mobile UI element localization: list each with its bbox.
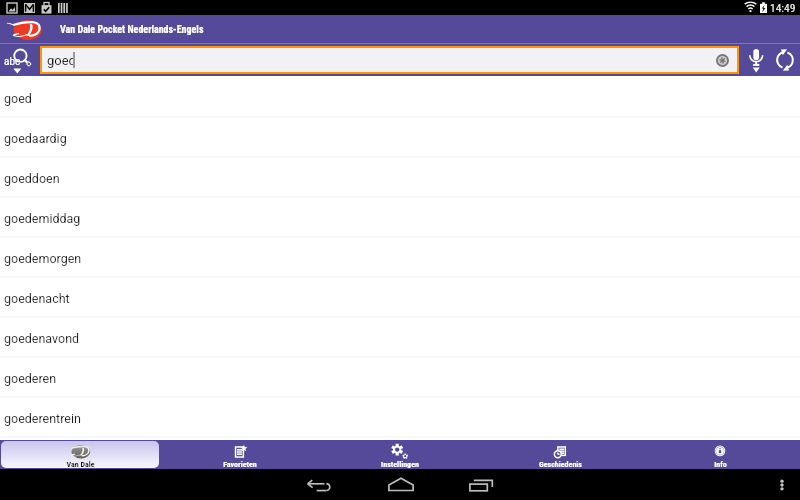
staticText: Van Dale (66, 460, 95, 468)
button[interactable]: Home (384, 469, 418, 500)
button[interactable]: Info (641, 441, 799, 468)
button[interactable]: Recent apps (465, 469, 499, 500)
button[interactable]: Swap languages (770, 45, 800, 75)
button[interactable]: Search mode (0, 44, 40, 76)
staticText: abc (4, 56, 21, 68)
button[interactable]: goedenavond (0, 318, 800, 358)
button[interactable]: goedemiddag (0, 198, 800, 238)
button[interactable]: goedemorgen (0, 238, 800, 278)
button[interactable]: goedenacht (0, 278, 800, 318)
staticText: goedaardig (4, 131, 67, 146)
button[interactable]: Instellingen (321, 441, 479, 468)
button[interactable]: Clear text (716, 54, 729, 67)
button[interactable]: goeddoen (0, 158, 800, 198)
button[interactable]: goederentrein (0, 398, 800, 438)
staticText: goedemorgen (4, 251, 82, 266)
button[interactable]: goedaardig (0, 118, 800, 158)
button[interactable]: Van Dale (1, 441, 159, 468)
staticText: Instellingen (381, 460, 419, 469)
staticText: Van Dale Pocket Nederlands-Engels (60, 24, 204, 36)
button[interactable]: Voice search (740, 45, 770, 75)
button[interactable]: goed (0, 78, 800, 118)
staticText: goedenavond (4, 331, 80, 346)
staticText: goed (4, 91, 32, 106)
staticText: goederen (4, 371, 57, 386)
staticText: goederentrein (4, 411, 81, 426)
staticText: Favorieten (223, 460, 257, 469)
staticText: Geschiedenis (539, 460, 582, 469)
staticText: 14:49 (770, 1, 796, 14)
staticText: goeddoen (4, 171, 60, 186)
button[interactable]: Back (302, 469, 336, 500)
staticText: goedemiddag (4, 211, 81, 226)
button[interactable]: More options (774, 477, 790, 493)
button[interactable]: Geschiedenis (481, 441, 639, 468)
button[interactable]: goederen (0, 358, 800, 398)
button[interactable]: Favorieten (161, 441, 319, 468)
staticText: goedenacht (4, 291, 70, 306)
staticText: Info (714, 460, 727, 469)
staticText: goed (47, 53, 76, 68)
